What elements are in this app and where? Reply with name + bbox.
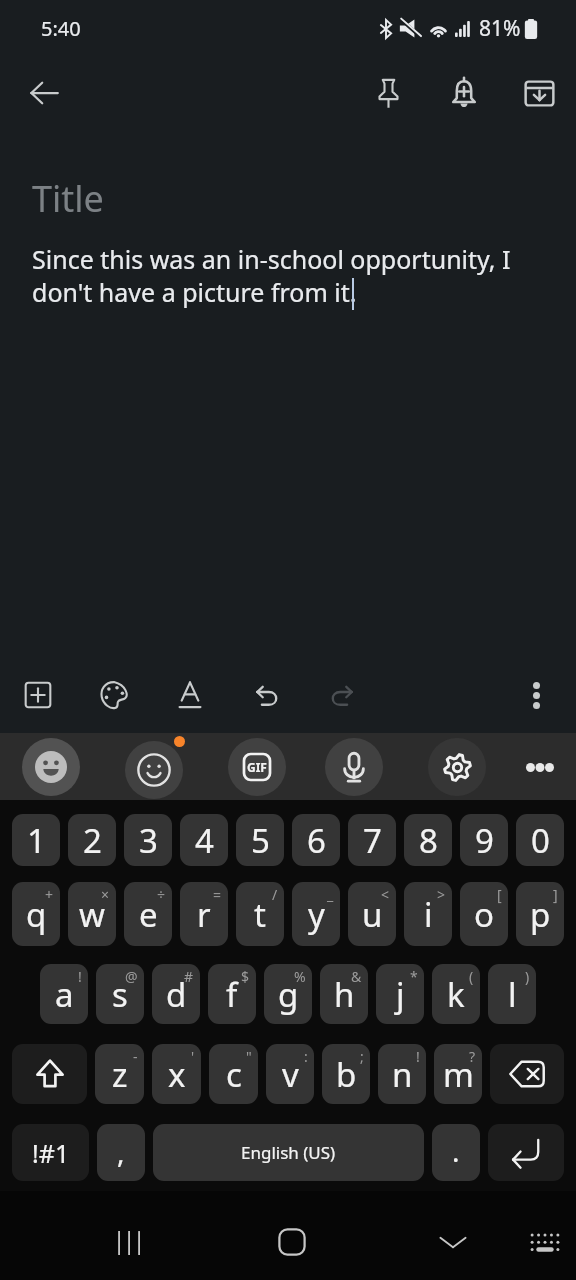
button[interactable]: i <box>404 882 452 946</box>
button[interactable]: p <box>516 882 564 946</box>
button[interactable]: 9 <box>460 814 508 866</box>
staticText: > <box>437 885 446 904</box>
button[interactable]: a <box>40 964 88 1024</box>
button[interactable]: n <box>378 1044 426 1104</box>
staticText: : <box>304 1047 308 1066</box>
button[interactable]: English (US) <box>153 1124 424 1181</box>
button[interactable]: c <box>209 1044 258 1104</box>
staticText: Since this was an in-school opportunity,… <box>32 242 511 309</box>
staticText: m <box>443 1052 474 1097</box>
staticText: 7 <box>363 818 382 863</box>
button[interactable]: Home <box>266 1216 318 1268</box>
staticText: ) <box>525 967 530 986</box>
button[interactable]: s <box>96 964 144 1024</box>
staticText: $ <box>241 967 250 986</box>
button[interactable]: Hide keyboard <box>427 1216 479 1268</box>
button[interactable]: Reminder <box>438 67 490 119</box>
staticText: e <box>139 892 158 937</box>
button[interactable]: 4 <box>180 814 228 866</box>
button[interactable]: g <box>264 964 312 1024</box>
button[interactable]: b <box>322 1044 370 1104</box>
button[interactable]: l <box>488 964 536 1024</box>
button[interactable]: q <box>12 882 60 946</box>
staticText: _ <box>327 885 334 904</box>
staticText: & <box>351 967 362 986</box>
button[interactable]: Recents <box>104 1216 156 1268</box>
button[interactable]: Stickers <box>125 741 183 799</box>
button[interactable]: Pin <box>362 67 414 119</box>
staticText: # <box>184 967 194 986</box>
staticText: l <box>508 972 517 1017</box>
staticText: u <box>362 892 383 937</box>
button[interactable]: Settings <box>428 738 486 796</box>
button[interactable]: 1 <box>12 814 60 866</box>
button[interactable]: 7 <box>348 814 396 866</box>
button[interactable]: GIF <box>228 738 286 796</box>
button[interactable]: Emoji <box>22 738 80 796</box>
button[interactable]: Voice input <box>325 738 383 796</box>
button[interactable]: y <box>292 882 340 946</box>
button[interactable]: z <box>95 1044 144 1104</box>
button[interactable]: More options <box>512 671 560 719</box>
staticText: 8 <box>419 818 438 863</box>
button[interactable]: v <box>266 1044 314 1104</box>
button[interactable]: Text formatting <box>166 671 214 719</box>
staticText: English (US) <box>241 1141 336 1164</box>
staticText: % <box>294 967 306 986</box>
staticText: 9 <box>475 818 494 863</box>
button[interactable] <box>488 1124 564 1181</box>
button[interactable]: d <box>152 964 200 1024</box>
button[interactable]: 8 <box>404 814 452 866</box>
button[interactable]: u <box>348 882 396 946</box>
staticText: j <box>396 972 405 1017</box>
button[interactable]: t <box>236 882 284 946</box>
staticText: " <box>246 1047 252 1066</box>
button[interactable]: e <box>124 882 172 946</box>
button[interactable]: Archive <box>513 67 565 119</box>
button[interactable]: 2 <box>68 814 116 866</box>
button[interactable] <box>12 1044 87 1104</box>
staticText: o <box>474 892 494 937</box>
button[interactable]: w <box>68 882 116 946</box>
button[interactable]: r <box>180 882 228 946</box>
staticText: a <box>55 972 74 1017</box>
button[interactable]: 0 <box>516 814 564 866</box>
staticText: d <box>166 972 187 1017</box>
staticText: y <box>308 892 325 937</box>
staticText: p <box>530 892 551 937</box>
button[interactable]: 3 <box>124 814 172 866</box>
staticText: t <box>254 892 266 937</box>
staticText: q <box>26 892 47 937</box>
staticText: Title <box>32 174 104 223</box>
staticText: x <box>168 1052 186 1097</box>
button[interactable]: !#1 <box>12 1124 89 1181</box>
button[interactable]: , <box>97 1124 145 1181</box>
button[interactable]: h <box>320 964 368 1024</box>
button[interactable]: 6 <box>292 814 340 866</box>
button[interactable]: Back <box>20 69 68 117</box>
button[interactable]: More keyboard options <box>514 741 566 793</box>
staticText: = <box>213 885 222 904</box>
button[interactable]: k <box>432 964 480 1024</box>
button[interactable]: Switch keyboard <box>519 1216 571 1268</box>
button[interactable]: 5 <box>236 814 284 866</box>
staticText: w <box>79 892 105 937</box>
button[interactable]: Redo <box>318 671 366 719</box>
button[interactable] <box>490 1044 564 1104</box>
staticText: + <box>45 885 54 904</box>
staticText: [ <box>497 885 502 904</box>
staticText: ! <box>78 967 82 986</box>
button[interactable]: f <box>208 964 256 1024</box>
button[interactable]: o <box>460 882 508 946</box>
button[interactable]: . <box>432 1124 480 1181</box>
staticText: . <box>452 1132 460 1170</box>
staticText: r <box>197 892 211 937</box>
button[interactable]: Undo <box>242 671 290 719</box>
button[interactable]: Background colour <box>90 671 138 719</box>
button[interactable]: Add <box>14 671 62 719</box>
button[interactable]: x <box>152 1044 201 1104</box>
staticText: ( <box>469 967 474 986</box>
button[interactable]: j <box>376 964 424 1024</box>
staticText: GIF <box>247 759 267 775</box>
button[interactable]: m <box>434 1044 482 1104</box>
